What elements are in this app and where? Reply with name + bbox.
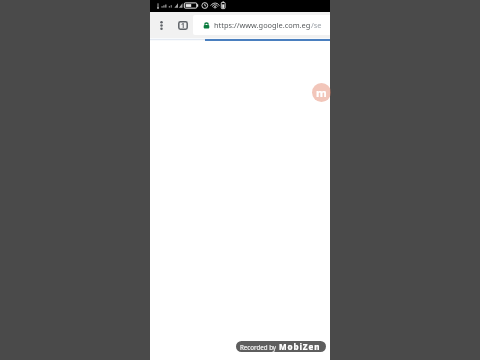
staticText: MobiZen <box>279 341 321 352</box>
button[interactable]: https://www.google.com.eg <box>193 15 330 35</box>
staticText: /se <box>311 20 322 30</box>
staticText: 1 <box>181 21 185 30</box>
staticText: m <box>316 85 327 100</box>
button[interactable]: Switch tabs <box>172 12 193 38</box>
button[interactable]: More options <box>150 12 172 38</box>
staticText: Recorded by <box>240 343 277 351</box>
button[interactable]: Mobizen recorder <box>312 83 331 102</box>
staticText: https://www.google.com.eg <box>214 20 311 30</box>
